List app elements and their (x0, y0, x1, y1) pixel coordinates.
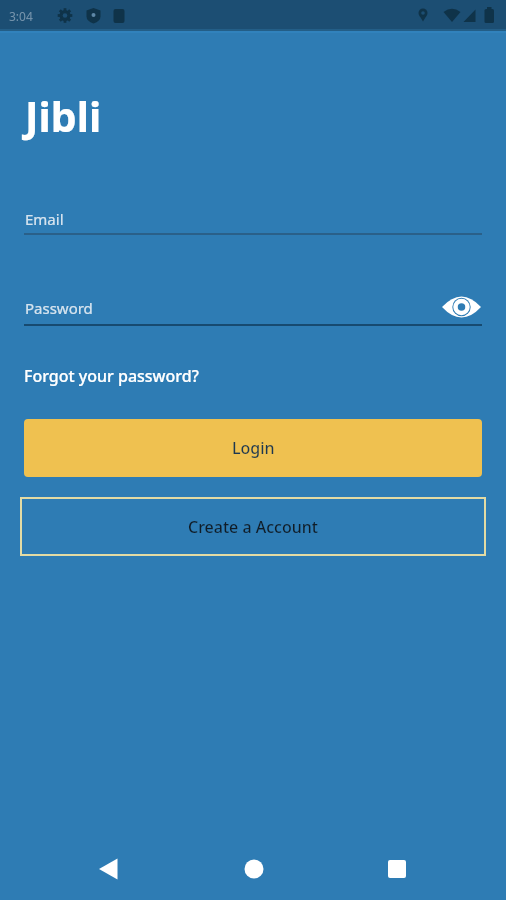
button[interactable]: Password (24, 292, 482, 326)
button[interactable]: Forgot your password? (24, 365, 199, 387)
button[interactable] (370, 845, 426, 893)
button[interactable] (440, 292, 482, 322)
button[interactable] (227, 845, 283, 893)
staticText: Password (25, 298, 93, 318)
button[interactable]: Email (24, 199, 482, 235)
button[interactable]: Create a Account (20, 497, 486, 556)
staticText: Jibli (25, 88, 102, 144)
staticText: 3:04 (9, 8, 33, 24)
staticText: Email (25, 209, 64, 229)
staticText: Login (232, 437, 275, 459)
staticText: Create a Account (188, 516, 318, 538)
button[interactable]: Login (24, 419, 482, 477)
button[interactable] (80, 845, 136, 893)
